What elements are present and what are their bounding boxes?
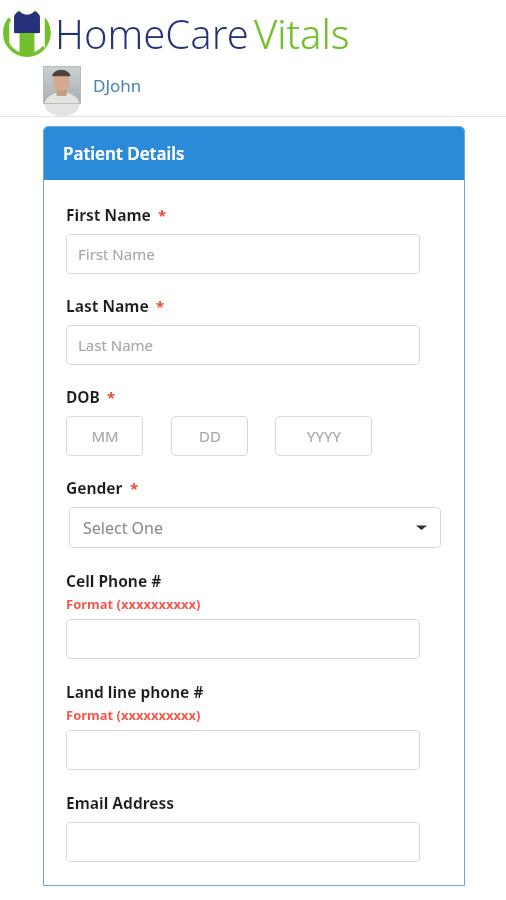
button[interactable] (66, 619, 420, 659)
button[interactable]: First Name (66, 234, 420, 274)
staticText: Last Name (78, 335, 154, 355)
staticText: YYYY (307, 426, 341, 446)
button[interactable] (66, 822, 420, 862)
staticText: Patient Details (63, 142, 185, 165)
staticText: MM (91, 426, 119, 446)
button[interactable]: DJohn (43, 66, 142, 104)
button[interactable]: YYYY (275, 416, 372, 456)
button[interactable]: MM (66, 416, 143, 456)
staticText: Select One (83, 517, 163, 539)
staticText: DD (199, 426, 221, 446)
staticText: First Name (78, 244, 155, 264)
button[interactable]: Select One (69, 507, 441, 548)
staticText: Email Address (66, 792, 175, 813)
staticText: Cell Phone # (66, 570, 162, 591)
staticText: Gender (66, 477, 123, 498)
staticText: Last Name (66, 295, 149, 316)
button[interactable] (66, 730, 420, 770)
staticText: * (156, 296, 165, 316)
staticText: * (107, 387, 116, 407)
button[interactable]: HomeCare (3, 6, 506, 60)
staticText: DOB (66, 386, 100, 407)
staticText: Vitals (254, 6, 350, 60)
staticText: First Name (66, 204, 151, 225)
staticText: Land line phone # (66, 681, 204, 702)
button[interactable]: DD (171, 416, 248, 456)
staticText: HomeCare (55, 6, 249, 60)
button[interactable]: Patient Details (43, 126, 465, 180)
staticText: * (130, 478, 139, 498)
staticText: Format (xxxxxxxxxx) (66, 595, 201, 613)
staticText: Format (xxxxxxxxxx) (66, 706, 201, 724)
button[interactable]: Last Name (66, 325, 420, 365)
staticText: * (158, 205, 167, 225)
staticText: DJohn (93, 74, 142, 97)
